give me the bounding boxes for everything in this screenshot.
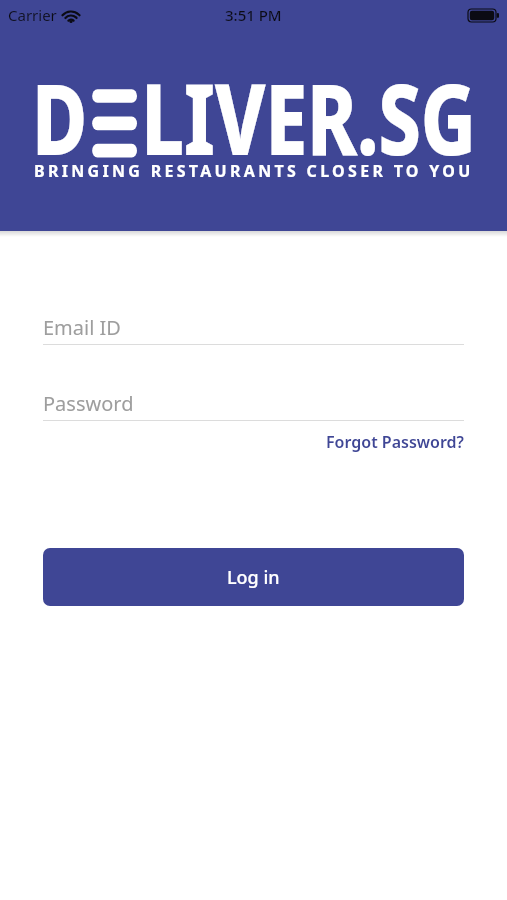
button[interactable]: Log in xyxy=(43,548,464,606)
staticText: Log in xyxy=(227,565,280,590)
staticText: Forgot Password? xyxy=(326,431,464,453)
staticText: D xyxy=(32,50,88,184)
button[interactable]: Password xyxy=(43,390,464,421)
staticText: LIVER.SG xyxy=(141,50,476,184)
staticText: BRINGING RESTAURANTS CLOSER TO YOU xyxy=(34,160,474,182)
staticText: 3:51 PM xyxy=(225,5,282,25)
staticText: Email ID xyxy=(43,314,121,341)
button[interactable]: Forgot Password? xyxy=(326,431,464,453)
button[interactable]: Email ID xyxy=(43,314,464,345)
staticText: Password xyxy=(43,390,134,417)
staticText: Carrier xyxy=(8,5,57,25)
